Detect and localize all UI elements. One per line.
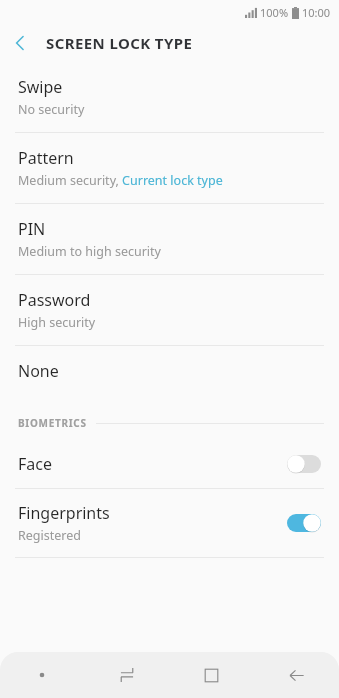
staticText: Password — [18, 289, 91, 311]
button[interactable]: PIN — [0, 204, 339, 274]
staticText: No security — [18, 101, 85, 118]
staticText: BIOMETRICS — [18, 416, 87, 430]
button[interactable]: Fingerprints — [0, 489, 339, 557]
staticText: High security — [18, 314, 96, 331]
staticText: 10:00 — [302, 5, 331, 20]
staticText: Fingerprints — [18, 502, 110, 524]
button[interactable]: Toggle on — [287, 514, 321, 532]
button[interactable]: Face — [0, 440, 339, 488]
staticText: Pattern — [18, 147, 74, 169]
staticText: PIN — [18, 218, 46, 240]
staticText: Registered — [18, 527, 81, 544]
button[interactable]: Swipe — [0, 62, 339, 132]
staticText: Medium to high security — [18, 243, 161, 260]
staticText: Medium security, Current lock type — [18, 172, 223, 189]
button[interactable]: Back — [254, 652, 339, 698]
staticText: Swipe — [18, 76, 63, 98]
button[interactable]: Menu — [0, 652, 84, 698]
staticText: None — [18, 360, 59, 382]
staticText: 100% — [260, 5, 289, 20]
button[interactable]: Toggle off — [287, 455, 321, 473]
staticText: Face — [18, 453, 52, 475]
button[interactable]: Home — [169, 652, 254, 698]
button[interactable]: Recents — [84, 652, 169, 698]
button[interactable]: Pattern — [0, 133, 339, 203]
staticText: SCREEN LOCK TYPE — [46, 33, 193, 53]
button[interactable]: Back — [0, 24, 40, 62]
button[interactable]: Password — [0, 275, 339, 345]
button[interactable]: None — [0, 346, 339, 396]
